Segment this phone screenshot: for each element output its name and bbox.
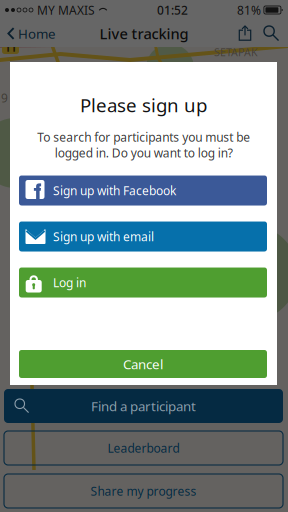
staticText: Home — [18, 25, 56, 42]
staticText: To search for participants you must be l… — [37, 129, 250, 161]
staticText: Live tracking — [99, 24, 188, 43]
staticText: Please sign up — [80, 93, 207, 117]
staticText: Share my progress — [90, 483, 196, 499]
staticText: Find a participant — [91, 397, 196, 415]
staticText: SETAPAK — [214, 45, 258, 59]
staticText: Sign up with Facebook — [53, 182, 176, 198]
staticText: 81% — [237, 2, 261, 18]
button[interactable]: Log in — [19, 267, 267, 297]
staticText: Cancel — [123, 355, 163, 373]
button[interactable]: Sign up with email — [19, 221, 267, 251]
staticText: 9 — [1, 90, 8, 106]
staticText: Sign up with email — [53, 228, 154, 244]
button[interactable]: Home — [0, 19, 62, 48]
staticText: MY MAXIS — [37, 2, 95, 18]
button[interactable]: Find a participant — [4, 389, 283, 423]
button[interactable]: Search — [258, 22, 288, 45]
staticText: Log in — [53, 274, 86, 290]
button[interactable]: Share — [232, 21, 258, 46]
button[interactable]: Sign up with Facebook — [19, 175, 267, 205]
staticText: Leaderboard — [107, 440, 179, 456]
button[interactable]: Share my progress — [4, 474, 283, 508]
staticText: 11 — [4, 40, 16, 55]
staticText: 01:52 — [157, 2, 188, 18]
button[interactable]: Leaderboard — [4, 431, 283, 465]
button[interactable]: Cancel — [19, 350, 267, 378]
